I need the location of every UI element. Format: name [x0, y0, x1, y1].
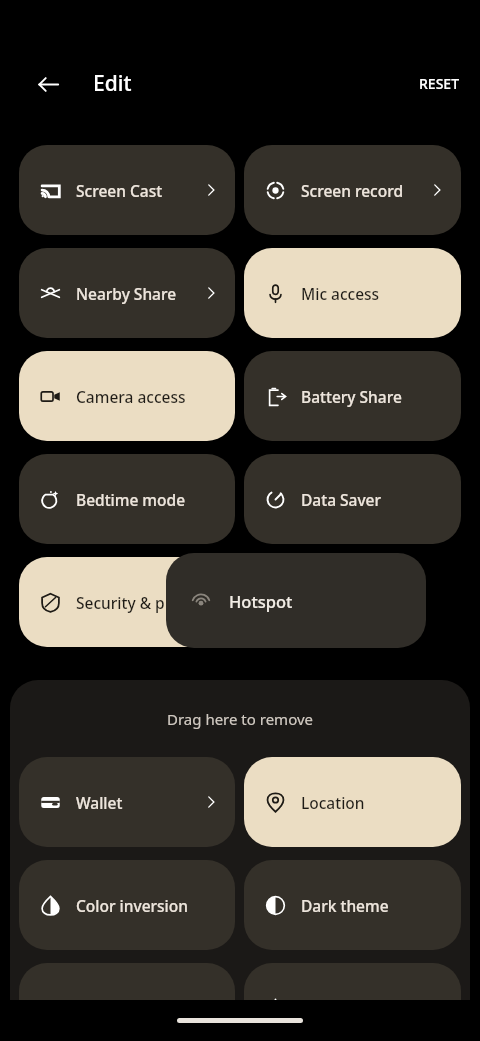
staticText: Location: [301, 792, 445, 813]
button[interactable]: Wallet: [19, 757, 235, 847]
staticText: Mic access: [301, 283, 445, 304]
staticText: Bedtime mode: [76, 489, 219, 510]
button[interactable]: Night Light: [19, 963, 235, 1041]
button[interactable]: Location: [244, 757, 461, 847]
staticText: Hotspot: [229, 590, 293, 612]
staticText: Battery Share: [301, 386, 445, 407]
button[interactable]: Dark theme: [244, 860, 461, 950]
button[interactable]: Nearby Share: [19, 248, 235, 338]
button[interactable]: Hotspot: [166, 553, 426, 648]
staticText: Extra dim: [301, 998, 445, 1019]
button[interactable]: Bedtime mode: [19, 454, 235, 544]
button[interactable]: Camera access: [19, 351, 235, 441]
staticText: Camera access: [76, 386, 219, 407]
staticText: Color inversion: [76, 895, 219, 916]
staticText: Night Light: [76, 998, 219, 1019]
staticText: Drag here to remove: [167, 709, 313, 729]
staticText: Security & privacy: [76, 592, 219, 613]
staticText: Screen record: [301, 180, 423, 201]
button[interactable]: Mic access: [244, 248, 461, 338]
staticText: Data Saver: [301, 489, 445, 510]
button[interactable]: Screen record: [244, 145, 461, 235]
staticText: Edit: [93, 69, 132, 98]
button[interactable]: Back: [24, 60, 72, 108]
staticText: RESET: [419, 74, 460, 93]
button[interactable]: Screen Cast: [19, 145, 235, 235]
staticText: Screen Cast: [76, 180, 197, 201]
staticText: Wallet: [76, 792, 197, 813]
button[interactable]: Color inversion: [19, 860, 235, 950]
button[interactable]: Extra dim: [244, 963, 461, 1041]
button[interactable]: Data Saver: [244, 454, 461, 544]
button[interactable]: Battery Share: [244, 351, 461, 441]
staticText: Dark theme: [301, 895, 445, 916]
button[interactable]: RESET: [409, 66, 470, 101]
button[interactable]: Security & privacy: [19, 557, 235, 647]
staticText: Nearby Share: [76, 283, 197, 304]
